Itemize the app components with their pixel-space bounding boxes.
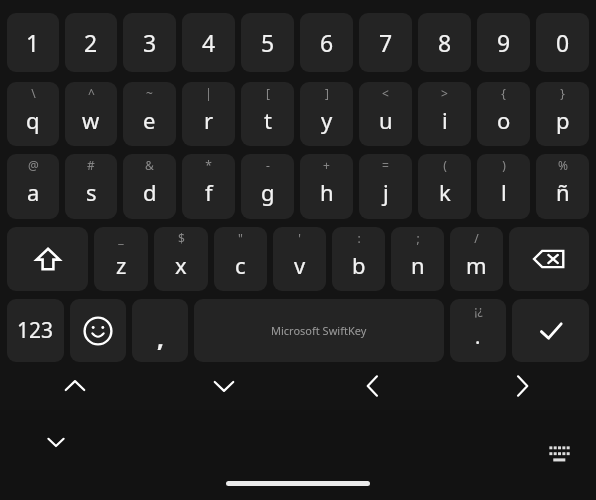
button[interactable]: { [477, 82, 530, 146]
staticText: 6 [320, 27, 334, 58]
button[interactable]: 0 [536, 13, 589, 72]
button[interactable]: 1 [7, 13, 59, 72]
staticText: l [501, 177, 507, 207]
staticText: m [466, 250, 487, 280]
button[interactable]: @ [7, 154, 59, 219]
button[interactable]: > [418, 82, 471, 146]
button[interactable]: Move right [499, 363, 545, 409]
staticText: } [560, 85, 565, 101]
button[interactable]: * [182, 154, 235, 219]
button[interactable]: 6 [300, 13, 353, 72]
staticText: ; [416, 230, 420, 246]
staticText: 0 [556, 27, 570, 58]
staticText: e [143, 105, 156, 135]
button[interactable]: & [123, 154, 176, 219]
staticText: h [320, 177, 334, 207]
staticText: [ [266, 85, 270, 101]
staticText: d [143, 177, 157, 207]
staticText: \ [31, 85, 36, 101]
button[interactable]: : [332, 227, 385, 291]
staticText: j [383, 177, 389, 207]
button[interactable]: 7 [359, 13, 412, 72]
staticText: / [474, 230, 479, 246]
staticText: < [382, 85, 389, 101]
button[interactable]: ~ [123, 82, 176, 146]
button[interactable]: 5 [241, 13, 294, 72]
staticText: t [264, 105, 272, 135]
staticText: 4 [202, 27, 216, 58]
staticText: % [558, 157, 568, 173]
staticText: f [205, 177, 213, 207]
button[interactable]: Hide keyboard [36, 422, 76, 462]
button[interactable]: Move left [350, 363, 396, 409]
staticText: c [235, 250, 246, 280]
staticText: s [86, 177, 97, 207]
staticText: , [157, 321, 164, 354]
staticText: _ [118, 230, 124, 246]
button[interactable]: Switch keyboard [542, 437, 578, 473]
staticText: v [294, 250, 306, 280]
staticText: @ [28, 157, 39, 173]
staticText: * [205, 157, 212, 173]
staticText: # [87, 157, 95, 173]
staticText: $ [178, 230, 185, 246]
button[interactable]: | [182, 82, 235, 146]
staticText: a [27, 177, 40, 207]
staticText: " [238, 230, 243, 246]
button[interactable]: Enter [512, 299, 589, 362]
button[interactable]: ¡¿ [450, 299, 506, 362]
button[interactable]: " [214, 227, 267, 291]
button[interactable]: ' [273, 227, 326, 291]
button[interactable]: Move down [201, 363, 247, 409]
button[interactable]: Microsoft SwiftKey [194, 299, 444, 362]
button[interactable]: [ [241, 82, 294, 146]
button[interactable]: + [300, 154, 353, 219]
button[interactable]: ; [391, 227, 444, 291]
staticText: g [261, 177, 275, 207]
button[interactable]: # [65, 154, 117, 219]
button[interactable]: / [450, 227, 503, 291]
button[interactable]: Shift [7, 227, 88, 291]
button[interactable]: - [241, 154, 294, 219]
button[interactable]: 4 [182, 13, 235, 72]
button[interactable]: ^ [65, 82, 117, 146]
staticText: 7 [379, 27, 393, 58]
staticText: y [321, 105, 333, 135]
button[interactable]: < [359, 82, 412, 146]
staticText: 3 [143, 27, 157, 58]
button[interactable]: 2 [65, 13, 117, 72]
button[interactable]: , [132, 299, 188, 362]
button[interactable]: Move up [52, 363, 98, 409]
button[interactable]: 8 [418, 13, 471, 72]
staticText: r [204, 105, 214, 135]
staticText: u [379, 105, 393, 135]
button[interactable]: $ [154, 227, 208, 291]
staticText: | [205, 85, 212, 101]
button[interactable]: \ [7, 82, 59, 146]
button[interactable]: = [359, 154, 412, 219]
staticText: b [352, 250, 366, 280]
button[interactable]: Emoji [70, 299, 126, 362]
button[interactable]: 3 [123, 13, 176, 72]
staticText: 1 [26, 27, 40, 58]
staticText: { [501, 85, 506, 101]
button[interactable]: % [536, 154, 589, 219]
staticText: ~ [146, 85, 153, 101]
button[interactable]: } [536, 82, 589, 146]
staticText: q [26, 105, 40, 135]
button[interactable]: ] [300, 82, 353, 146]
staticText: 9 [497, 27, 511, 58]
staticText: ¡¿ [474, 302, 483, 318]
staticText: > [441, 85, 448, 101]
staticText: p [556, 105, 570, 135]
button[interactable]: 123 [7, 299, 64, 362]
button[interactable]: ) [477, 154, 530, 219]
button[interactable]: _ [94, 227, 148, 291]
staticText: ) [502, 157, 506, 173]
button[interactable]: Backspace [509, 227, 589, 291]
staticText: ] [325, 85, 329, 101]
button[interactable]: ( [418, 154, 471, 219]
staticText: Microsoft SwiftKey [271, 323, 367, 338]
button[interactable]: 9 [477, 13, 530, 72]
staticText: o [497, 105, 511, 135]
